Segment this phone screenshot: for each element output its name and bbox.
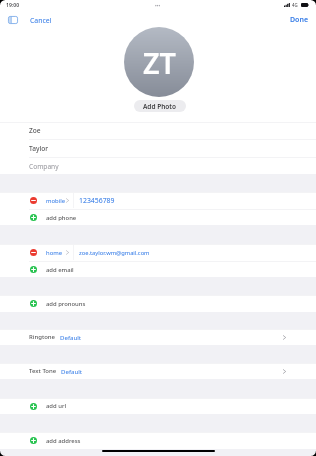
button[interactable]: mobile — [0, 192, 316, 209]
staticText: Company — [29, 162, 59, 171]
staticText: Taylor — [29, 144, 49, 153]
button[interactable]: add email — [0, 262, 316, 277]
staticText: add pronouns — [46, 300, 86, 308]
button[interactable]: add address — [0, 432, 316, 449]
staticText: add phone — [46, 214, 77, 222]
staticText: Add Photo — [143, 102, 177, 111]
staticText: mobile — [46, 197, 66, 205]
staticText: 4G — [292, 2, 298, 8]
staticText: add address — [46, 437, 81, 445]
staticText: ZT — [143, 43, 176, 82]
staticText: add url — [46, 402, 66, 410]
staticText: zoe.taylor.wm@gmail.com — [79, 249, 150, 257]
button[interactable]: Contact photo — [124, 27, 194, 97]
button[interactable]: add pronouns — [0, 295, 316, 312]
staticText: Cancel — [30, 16, 52, 25]
staticText: home — [46, 249, 63, 257]
staticText: Ringtone — [29, 333, 56, 341]
staticText: 123456789 — [79, 196, 115, 205]
button[interactable]: Taylor — [0, 140, 316, 157]
staticText: add email — [46, 266, 74, 274]
staticText: ••• — [155, 3, 161, 9]
staticText: Zoe — [29, 126, 41, 135]
button[interactable]: Company — [0, 158, 316, 174]
button[interactable]: Done — [290, 15, 309, 25]
staticText: Default — [61, 367, 82, 375]
button[interactable]: add url — [0, 398, 316, 414]
button[interactable]: Zoe — [0, 122, 316, 139]
staticText: Default — [60, 333, 81, 341]
button[interactable]: home — [0, 244, 316, 261]
button[interactable]: Text Tone — [0, 363, 316, 379]
staticText: 19:00 — [6, 2, 20, 9]
button[interactable]: add phone — [0, 210, 316, 225]
staticText: Text Tone — [29, 367, 57, 375]
button[interactable]: Cancel — [30, 16, 52, 25]
button[interactable]: Show sidebar — [8, 16, 18, 24]
button[interactable]: Ringtone — [0, 329, 316, 345]
button[interactable]: Add Photo — [134, 100, 186, 112]
staticText: Done — [290, 15, 309, 25]
